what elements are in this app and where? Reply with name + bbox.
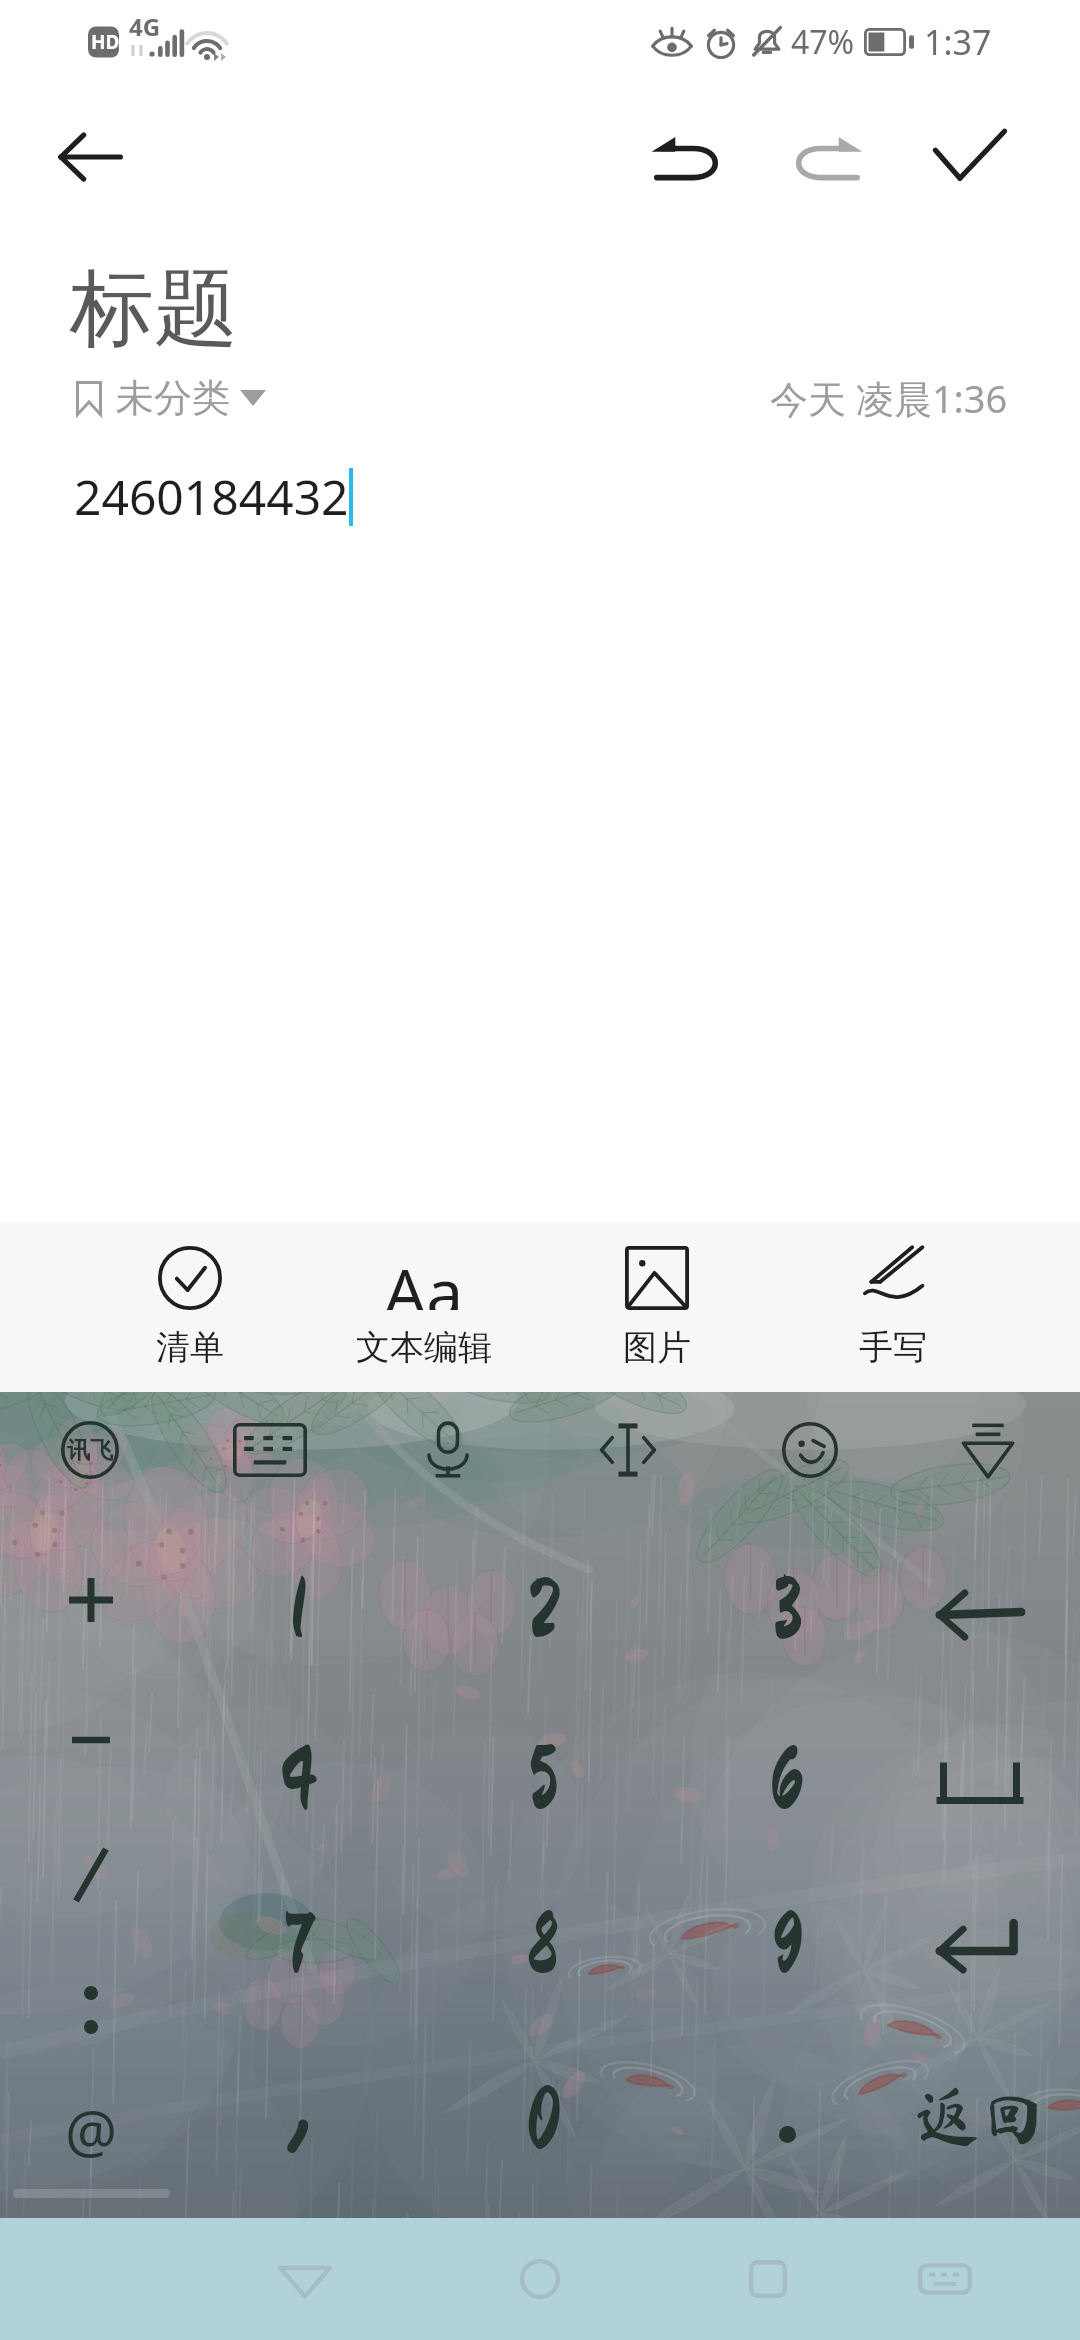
button[interactable]: Done	[924, 111, 1016, 203]
staticText: 2	[527, 1567, 560, 1653]
button[interactable]: Enter	[880, 1861, 1080, 2029]
button[interactable]: 1	[188, 1526, 408, 1694]
button[interactable]	[0, 1673, 182, 1807]
staticText: 今天 凌晨1:36	[770, 372, 1008, 424]
other: Enter	[938, 1920, 1022, 1970]
button[interactable]: Emoji	[756, 1400, 864, 1500]
staticText: 手写	[859, 1326, 927, 1369]
button[interactable]: Redo	[786, 115, 876, 205]
button[interactable]: @	[0, 2063, 182, 2197]
button[interactable]: iFlytek input method	[36, 1400, 144, 1500]
button[interactable]: 0	[433, 2036, 653, 2204]
staticText: 1	[289, 1567, 307, 1653]
other: Space	[940, 1766, 1020, 1804]
staticText: 文本编辑	[356, 1326, 492, 1369]
button[interactable]	[188, 2036, 408, 2204]
button[interactable]: Backspace	[880, 1531, 1080, 1699]
staticText: @	[65, 2091, 118, 2170]
button[interactable]	[0, 1808, 182, 1942]
button[interactable]: 清单	[80, 1222, 300, 1392]
staticText: 9	[771, 1902, 803, 1988]
button[interactable]: Voice input	[394, 1400, 502, 1500]
button[interactable]: 未分类	[76, 374, 266, 422]
button[interactable]: 5	[433, 1696, 653, 1864]
staticText: 6	[769, 1737, 805, 1823]
staticText: 2460184432	[74, 464, 349, 529]
staticText: 0	[526, 2077, 561, 2163]
button[interactable]: 4	[188, 1696, 408, 1864]
button[interactable]: Back	[56, 123, 124, 191]
staticText: 4G	[129, 10, 161, 43]
button[interactable]	[0, 1533, 182, 1667]
staticText: 讯飞	[67, 1436, 113, 1465]
button[interactable]: Space	[880, 1701, 1080, 1869]
staticText: 标题	[70, 256, 238, 362]
button[interactable]: 图片	[547, 1222, 767, 1392]
staticText: 3	[772, 1567, 803, 1653]
button[interactable]: Home	[482, 2218, 598, 2340]
staticText: 8	[527, 1902, 559, 1988]
button[interactable]	[0, 1943, 182, 2077]
staticText: 图片	[623, 1326, 691, 1369]
staticText: 47%	[791, 20, 855, 64]
button[interactable]: 7	[188, 1861, 408, 2029]
button[interactable]: Switch keyboard layout	[216, 1400, 324, 1500]
button[interactable]: 返回	[880, 2031, 1080, 2199]
button[interactable]: Aa	[314, 1222, 534, 1392]
button[interactable]	[677, 2036, 897, 2204]
button[interactable]: 3	[677, 1526, 897, 1694]
staticText: 未分类	[116, 374, 230, 422]
button[interactable]: 9	[677, 1861, 897, 2029]
staticText: 5	[527, 1737, 560, 1823]
staticText: 返回	[914, 2082, 1046, 2148]
button[interactable]: Recents	[710, 2218, 826, 2340]
staticText: 1:37	[924, 19, 992, 65]
button[interactable]: 8	[433, 1861, 653, 2029]
staticText: 7	[283, 1902, 313, 1988]
button[interactable]: 手写	[783, 1222, 1003, 1392]
staticText: HD	[91, 29, 120, 55]
staticText: 清单	[156, 1326, 224, 1369]
staticText: 4	[279, 1737, 318, 1823]
staticText: Aa	[384, 1246, 464, 1310]
button[interactable]: Show keyboard	[887, 2218, 1003, 2340]
button[interactable]: Back	[247, 2218, 363, 2340]
button[interactable]: Move cursor	[574, 1400, 682, 1500]
button[interactable]: 6	[677, 1696, 897, 1864]
other: Backspace	[938, 1591, 1022, 1639]
button[interactable]: 2	[433, 1526, 653, 1694]
button[interactable]: Hide keyboard	[934, 1400, 1042, 1500]
button[interactable]: Undo	[638, 115, 728, 205]
